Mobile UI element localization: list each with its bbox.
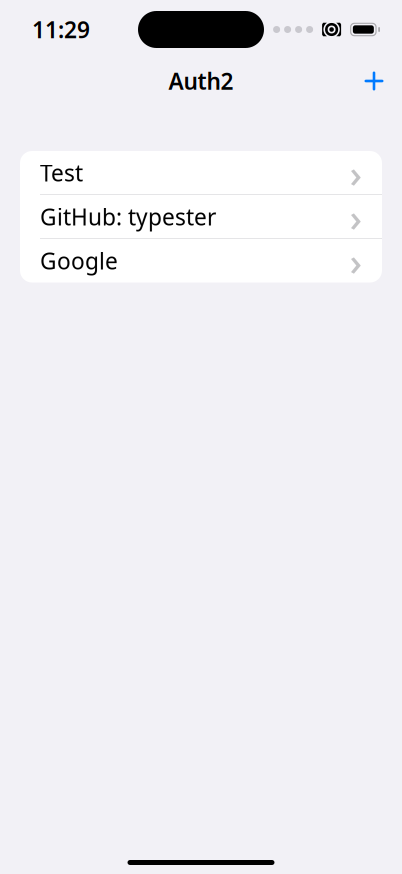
button[interactable]: Google: [20, 239, 382, 282]
button[interactable]: Add: [352, 59, 396, 103]
staticText: Test: [40, 158, 83, 188]
staticText: Google: [40, 246, 118, 276]
button[interactable]: Test: [20, 151, 382, 194]
button[interactable]: GitHub: typester: [20, 195, 382, 238]
staticText: ›: [349, 191, 362, 242]
staticText: GitHub: typester: [40, 202, 216, 232]
staticText: ›: [349, 235, 362, 286]
staticText: Auth2: [168, 66, 233, 96]
staticText: ›: [349, 147, 362, 198]
staticText: 11:29: [32, 14, 90, 44]
